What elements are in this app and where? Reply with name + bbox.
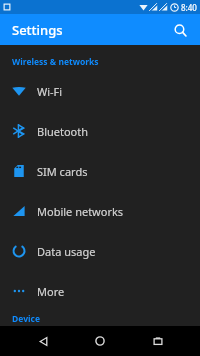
button[interactable]: Wi-Fi bbox=[0, 71, 200, 111]
button[interactable]: SIM cards bbox=[0, 151, 200, 191]
staticText: SIM cards bbox=[37, 164, 88, 179]
staticText: Settings bbox=[12, 21, 63, 39]
button[interactable]: More bbox=[0, 271, 200, 311]
button[interactable]: Mobile networks bbox=[0, 191, 200, 231]
button[interactable]: Bluetooth bbox=[0, 111, 200, 151]
button[interactable]: Recent apps bbox=[143, 326, 173, 356]
staticText: Device bbox=[12, 313, 40, 325]
staticText: Mobile networks bbox=[37, 204, 124, 219]
button[interactable]: Data usage bbox=[0, 231, 200, 271]
staticText: Bluetooth bbox=[37, 124, 89, 139]
staticText: More bbox=[37, 284, 65, 299]
button[interactable]: Back bbox=[28, 326, 58, 356]
button[interactable]: Search bbox=[168, 18, 192, 42]
staticText: Wi-Fi bbox=[37, 84, 63, 99]
staticText: Data usage bbox=[37, 244, 96, 259]
staticText: 8:40 bbox=[181, 2, 197, 13]
staticText: Wireless & networks bbox=[12, 56, 99, 68]
button[interactable]: Home bbox=[85, 326, 115, 356]
